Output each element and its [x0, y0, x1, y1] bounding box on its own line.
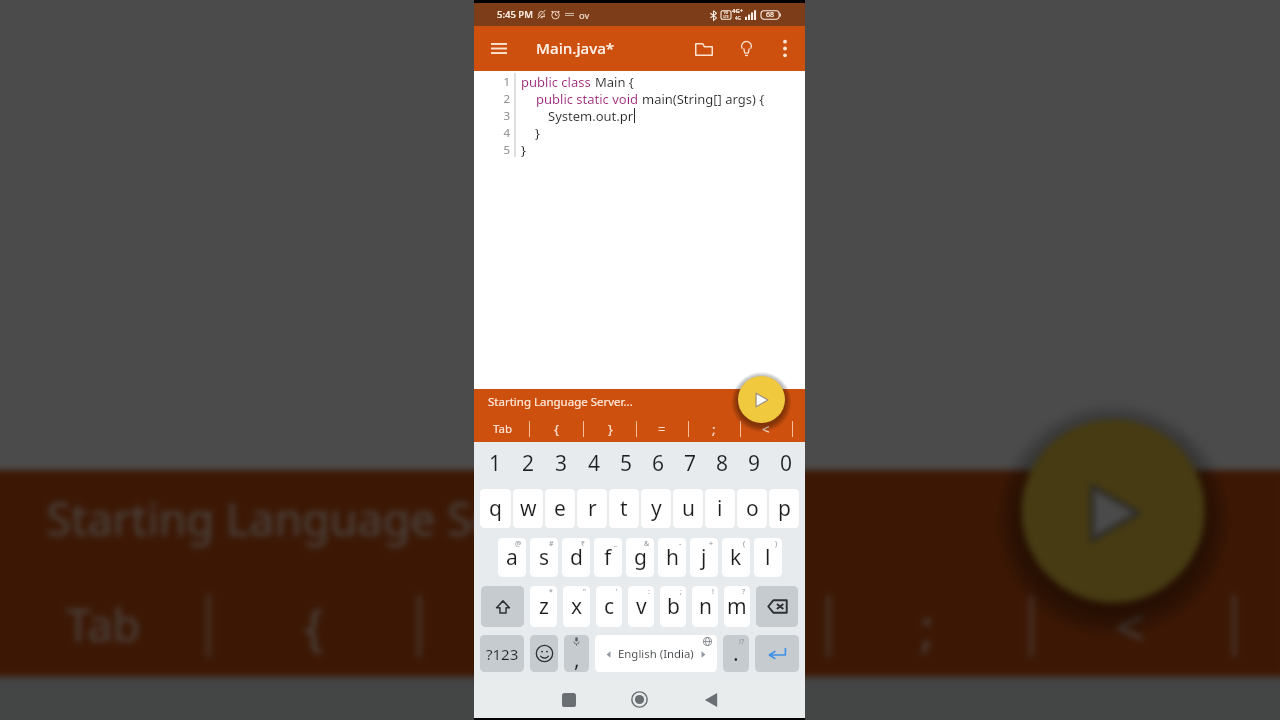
- button[interactable]: ,: [564, 635, 589, 672]
- button[interactable]: [516, 416, 543, 442]
- button[interactable]: [727, 416, 753, 442]
- button[interactable]: .: [723, 635, 749, 672]
- button[interactable]: Open navigation menu: [474, 26, 523, 71]
- button[interactable]: Recent apps: [546, 681, 591, 718]
- button[interactable]: m: [724, 586, 750, 627]
- staticText: 2: [522, 449, 535, 478]
- button[interactable]: [979, 575, 1080, 677]
- button[interactable]: q: [480, 489, 511, 528]
- button[interactable]: j: [690, 538, 718, 577]
- button[interactable]: [623, 416, 649, 442]
- button[interactable]: ;: [701, 416, 727, 442]
- button[interactable]: <: [1080, 575, 1181, 677]
- button[interactable]: [366, 575, 472, 677]
- staticText: {: [304, 591, 323, 661]
- button[interactable]: Run code: [738, 376, 785, 423]
- button[interactable]: English (India): [595, 635, 717, 672]
- staticText: o: [746, 494, 759, 523]
- button[interactable]: u: [673, 489, 703, 528]
- button[interactable]: 0: [1146, 677, 1271, 720]
- button[interactable]: i: [705, 489, 735, 528]
- button[interactable]: t: [609, 489, 639, 528]
- staticText: z: [539, 592, 549, 621]
- button[interactable]: [675, 416, 701, 442]
- button[interactable]: {: [261, 575, 366, 677]
- button[interactable]: c: [596, 586, 622, 627]
- button[interactable]: d: [562, 538, 590, 577]
- button[interactable]: Tab: [489, 416, 516, 442]
- button[interactable]: }: [597, 416, 623, 442]
- button[interactable]: [1181, 575, 1280, 677]
- button[interactable]: 8: [897, 677, 1022, 720]
- button[interactable]: 9: [738, 442, 770, 485]
- button[interactable]: b: [660, 586, 686, 627]
- staticText: 4: [588, 449, 601, 478]
- button[interactable]: {: [543, 416, 570, 442]
- button[interactable]: 3: [269, 677, 398, 720]
- button[interactable]: 7: [772, 677, 897, 720]
- button[interactable]: n: [692, 586, 718, 627]
- button[interactable]: 5: [522, 677, 647, 720]
- button[interactable]: 1: [11, 677, 140, 720]
- button[interactable]: More options: [767, 26, 803, 71]
- button[interactable]: l: [754, 538, 782, 577]
- button[interactable]: x: [563, 586, 590, 627]
- button[interactable]: Back: [688, 681, 733, 718]
- staticText: public class: [521, 73, 595, 90]
- button[interactable]: o: [737, 489, 767, 528]
- button[interactable]: v: [628, 586, 654, 627]
- button[interactable]: [779, 416, 805, 442]
- button[interactable]: w: [513, 489, 543, 528]
- button[interactable]: g: [626, 538, 654, 577]
- staticText: 4: [474, 125, 510, 141]
- button[interactable]: 6: [647, 677, 772, 720]
- button[interactable]: [530, 635, 558, 672]
- staticText: 8: [716, 449, 729, 478]
- button[interactable]: ;: [877, 575, 979, 677]
- button[interactable]: =: [649, 416, 675, 442]
- button[interactable]: 7: [674, 442, 706, 485]
- button[interactable]: 4: [578, 442, 610, 485]
- button[interactable]: }: [472, 575, 573, 677]
- button[interactable]: =: [674, 575, 776, 677]
- staticText: 4G+: [732, 7, 744, 15]
- button[interactable]: [573, 575, 674, 677]
- staticText: n: [699, 592, 712, 621]
- button[interactable]: ?123: [480, 635, 524, 672]
- button[interactable]: Hints: [725, 26, 767, 71]
- button[interactable]: [755, 635, 799, 672]
- button[interactable]: 3: [545, 442, 578, 485]
- button[interactable]: 1: [479, 442, 512, 485]
- button[interactable]: a: [498, 538, 526, 577]
- button[interactable]: 8: [706, 442, 738, 485]
- button[interactable]: e: [545, 489, 575, 528]
- button[interactable]: 2: [140, 677, 269, 720]
- button[interactable]: z: [530, 586, 557, 627]
- button[interactable]: 4: [398, 677, 522, 720]
- button[interactable]: f: [594, 538, 622, 577]
- button[interactable]: 6: [642, 442, 674, 485]
- button[interactable]: h: [658, 538, 686, 577]
- button[interactable]: y: [641, 489, 671, 528]
- button[interactable]: [570, 416, 597, 442]
- button[interactable]: 2: [512, 442, 545, 485]
- button[interactable]: [156, 575, 261, 677]
- staticText: English (India): [618, 646, 694, 662]
- button[interactable]: k: [722, 538, 750, 577]
- button[interactable]: s: [530, 538, 558, 577]
- button[interactable]: <: [753, 416, 779, 442]
- button[interactable]: [776, 575, 877, 677]
- button[interactable]: Tab: [50, 575, 156, 677]
- button[interactable]: r: [577, 489, 607, 528]
- button[interactable]: Home: [617, 681, 662, 718]
- button[interactable]: [756, 586, 798, 627]
- button[interactable]: 5: [610, 442, 642, 485]
- button[interactable]: 9: [1022, 677, 1146, 720]
- staticText: +: [709, 539, 714, 549]
- button[interactable]: p: [769, 489, 799, 528]
- button[interactable]: Run code: [1022, 419, 1205, 603]
- button[interactable]: 0: [770, 442, 802, 485]
- button[interactable]: [481, 586, 524, 627]
- button[interactable]: Open file: [683, 26, 725, 71]
- staticText: &: [644, 539, 650, 549]
